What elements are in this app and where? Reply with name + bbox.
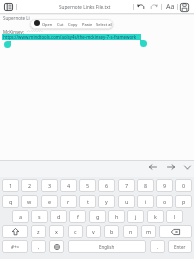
staticText: 1 <box>9 182 13 189</box>
staticText: z <box>37 228 40 235</box>
button[interactable]: #+= <box>2 240 28 253</box>
button[interactable]: v <box>86 225 101 238</box>
button[interactable]: h <box>108 210 125 223</box>
staticText: 6 <box>105 182 109 189</box>
staticText: 8 <box>144 182 148 189</box>
button[interactable]: Open <box>42 19 53 29</box>
button[interactable]: b <box>104 225 119 238</box>
staticText: u <box>125 198 129 205</box>
button[interactable]: Enter <box>168 240 192 253</box>
button[interactable]: g <box>89 210 106 223</box>
staticText: x <box>55 228 58 235</box>
staticText: d <box>57 213 61 220</box>
button[interactable] <box>167 164 175 170</box>
button[interactable]: 5 <box>79 179 96 192</box>
button[interactable]: 0 <box>175 179 192 192</box>
staticText: y <box>105 198 108 205</box>
button[interactable]: f <box>69 210 86 223</box>
staticText: h <box>115 213 119 220</box>
button[interactable] <box>150 3 158 10</box>
button[interactable]: x <box>49 225 64 238</box>
button[interactable]: c <box>68 225 83 238</box>
staticText: English <box>99 244 115 250</box>
button[interactable]: 4 <box>60 179 77 192</box>
button[interactable]: 2 <box>21 179 38 192</box>
button[interactable]: l <box>166 210 183 223</box>
button[interactable]: s <box>31 210 48 223</box>
staticText: Supernote Links File.txt <box>59 4 111 10</box>
staticText: 4 <box>67 182 71 189</box>
staticText: q <box>9 198 13 205</box>
staticText: Copy <box>68 22 78 27</box>
staticText: Select all <box>96 22 112 27</box>
button[interactable]: Aa <box>164 0 177 13</box>
button[interactable]: j <box>127 210 144 223</box>
button[interactable]: t <box>79 195 96 208</box>
button[interactable]: w <box>21 195 38 208</box>
staticText: r <box>67 198 70 205</box>
staticText: 2 <box>28 182 32 189</box>
staticText: -·-·-·-·-·-·- <box>27 28 43 33</box>
staticText: j <box>135 213 137 220</box>
button[interactable]: k <box>147 210 164 223</box>
button[interactable]: 8 <box>137 179 154 192</box>
staticText: o <box>163 198 167 205</box>
button[interactable]: 6 <box>98 179 115 192</box>
button[interactable]: Copy <box>68 19 79 29</box>
staticText: p <box>182 198 186 205</box>
button[interactable]: y <box>98 195 115 208</box>
button[interactable]: i <box>137 195 154 208</box>
button[interactable]: p <box>175 195 192 208</box>
staticText: s <box>38 213 41 220</box>
staticText: n <box>129 228 133 235</box>
button[interactable]: . <box>150 240 165 253</box>
staticText: #+= <box>11 244 20 250</box>
button[interactable]: u <box>118 195 135 208</box>
staticText: Paste <box>82 22 93 27</box>
button[interactable]: 7 <box>118 179 135 192</box>
button[interactable]: 9 <box>156 179 173 192</box>
button[interactable] <box>137 3 145 10</box>
staticText: a <box>19 213 23 220</box>
button[interactable]: Paste <box>82 19 93 29</box>
staticText: i <box>145 198 147 205</box>
staticText: Aa <box>166 2 175 12</box>
staticText: w <box>27 198 32 205</box>
button[interactable]: , <box>31 240 46 253</box>
staticText: c <box>74 228 77 235</box>
button[interactable]: Select all <box>96 19 112 29</box>
button[interactable]: n <box>123 225 138 238</box>
staticText: b <box>110 228 114 235</box>
staticText: 0 <box>182 182 186 189</box>
button[interactable]: o <box>156 195 173 208</box>
button[interactable]: z <box>31 225 46 238</box>
button[interactable]: English <box>68 240 146 253</box>
staticText: Cut <box>57 22 64 27</box>
button[interactable] <box>159 225 192 238</box>
staticText: , <box>38 243 40 250</box>
staticText: t <box>87 198 89 205</box>
staticText: k <box>154 213 157 220</box>
button[interactable] <box>4 3 13 11</box>
button[interactable] <box>2 225 28 238</box>
staticText: 3 <box>48 182 52 189</box>
button[interactable]: Cut <box>57 19 65 29</box>
button[interactable] <box>180 3 189 12</box>
staticText: . <box>157 243 159 250</box>
button[interactable]: q <box>2 195 19 208</box>
button[interactable] <box>184 165 191 170</box>
staticText: l <box>174 213 176 220</box>
staticText: Open <box>42 22 53 27</box>
button[interactable] <box>149 164 157 170</box>
button[interactable]: 1 <box>2 179 19 192</box>
button[interactable]: a <box>12 210 29 223</box>
staticText: m <box>146 228 152 235</box>
button[interactable]: m <box>141 225 156 238</box>
button[interactable]: d <box>50 210 67 223</box>
staticText: Supernote Li <box>3 15 30 21</box>
button[interactable]: 3 <box>41 179 58 192</box>
staticText: Enter <box>174 244 186 250</box>
button[interactable] <box>49 240 64 253</box>
button[interactable]: e <box>41 195 58 208</box>
button[interactable]: r <box>60 195 77 208</box>
